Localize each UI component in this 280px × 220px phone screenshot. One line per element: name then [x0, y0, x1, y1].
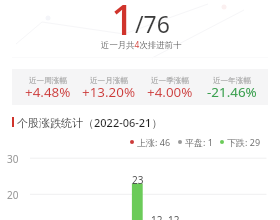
staticText: 上涨: 46 [137, 136, 171, 148]
staticText: 1 [111, 0, 135, 47]
button[interactable] [12, 0, 268, 62]
staticText: +13.20% [82, 83, 136, 101]
staticText: 下跌: 29 [227, 136, 261, 148]
button[interactable]: 近一年涨幅 [201, 69, 263, 105]
staticText: 12 [168, 213, 180, 220]
staticText: +4.00% [147, 83, 193, 101]
staticText: +4.48% [25, 83, 71, 101]
staticText: 近一季涨幅 [151, 76, 189, 86]
button[interactable]: 近一月涨幅 [78, 69, 139, 105]
staticText: -21.46% [207, 83, 257, 101]
staticText: 23 [132, 173, 144, 187]
staticText: 近一周涨幅 [29, 76, 67, 86]
staticText: /76 [135, 8, 170, 39]
staticText: 12 [151, 213, 163, 220]
button[interactable]: 近一周涨幅 [17, 69, 78, 105]
staticText: 个股涨跌统计（2022-06-21） [17, 115, 163, 129]
staticText: 平盘: 1 [185, 136, 213, 148]
button[interactable]: 上涨: 46 [130, 136, 171, 148]
button[interactable]: 近一季涨幅 [139, 69, 201, 105]
staticText: 30 [7, 152, 19, 166]
staticText: 近一月共4次排进前十 [101, 39, 182, 50]
button[interactable]: 平盘: 1 [178, 136, 213, 148]
staticText: 近一月涨幅 [90, 76, 128, 86]
staticText: 近一年涨幅 [213, 76, 251, 86]
staticText: 20 [7, 188, 19, 202]
button[interactable]: 个股涨跌统计（2022-06-21） [12, 115, 163, 129]
button[interactable]: 下跌: 29 [220, 136, 261, 148]
